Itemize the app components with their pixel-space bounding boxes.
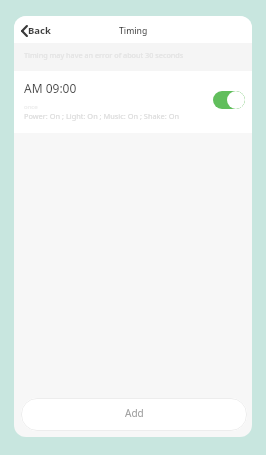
- button[interactable]: AM 09:00: [14, 71, 252, 133]
- staticText: AM 09:00: [24, 80, 77, 96]
- staticText: Timing: [119, 25, 148, 37]
- staticText: Add: [125, 406, 144, 420]
- button[interactable]: Toggle alarm: [213, 91, 245, 109]
- staticText: Back: [28, 24, 51, 37]
- button[interactable]: Back: [14, 20, 59, 41]
- staticText: Power: On ; Light: On ; Music: On ; Shak…: [24, 111, 179, 121]
- staticText: once: [24, 103, 38, 111]
- button[interactable]: Add: [21, 398, 247, 431]
- staticText: Timing may have an error of about 30 sec…: [24, 50, 184, 60]
